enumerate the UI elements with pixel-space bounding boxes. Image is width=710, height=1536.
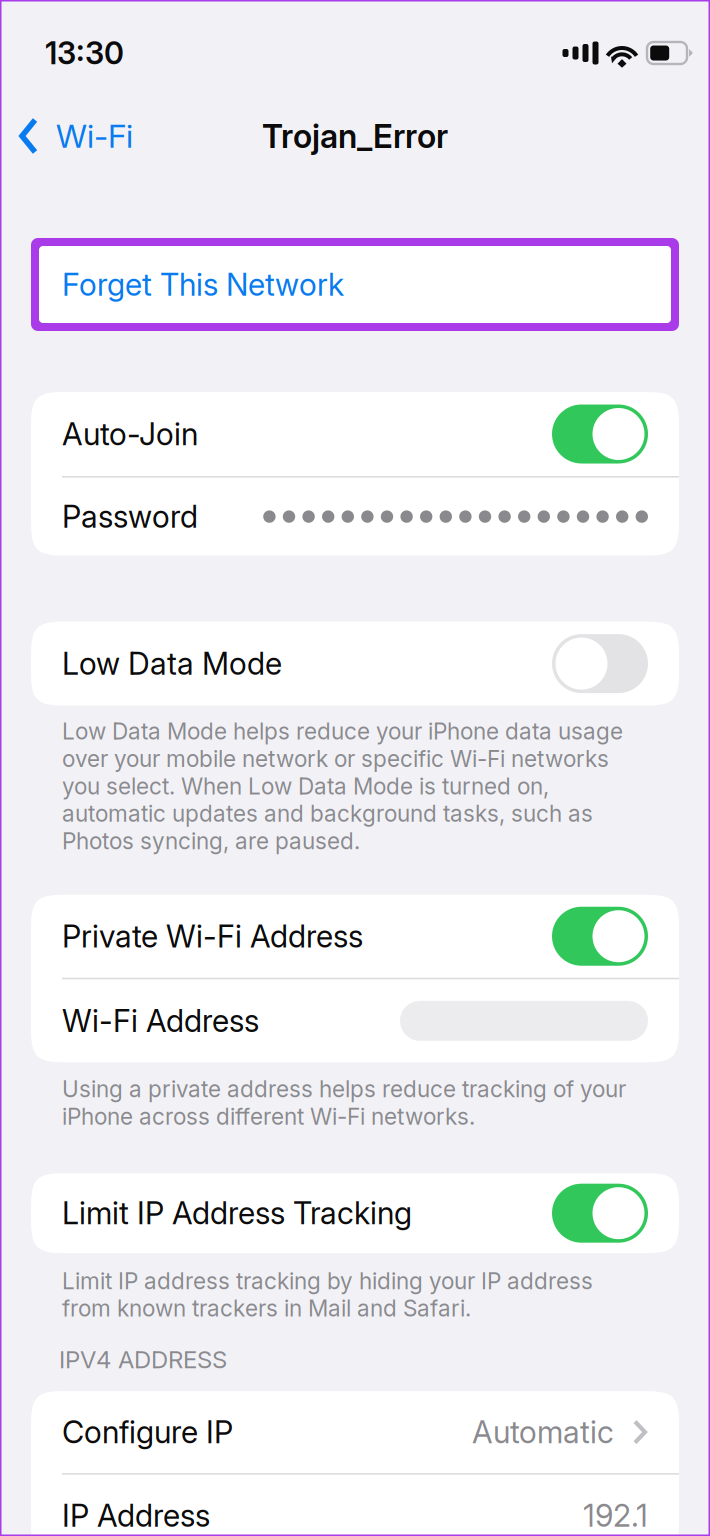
staticText: Low Data Mode helps reduce your iPhone d… [62, 718, 623, 855]
button[interactable]: Configure IP [31, 1391, 679, 1473]
staticText: Using a private address helps reduce tra… [62, 1075, 626, 1130]
button[interactable]: Forget This Network [0, 238, 710, 331]
staticText: Automatic [472, 1413, 614, 1451]
staticText: 13:30 [45, 34, 124, 71]
staticText: IPV4 ADDRESS [59, 1345, 227, 1374]
staticText: Auto-Join [62, 415, 198, 452]
staticText: Configure IP [62, 1413, 233, 1451]
staticText: Forget This Network [62, 266, 344, 303]
staticText: Limit IP address tracking by hiding your… [62, 1267, 593, 1322]
staticText: Trojan_Error [262, 116, 448, 156]
staticText: Low Data Mode [62, 645, 282, 682]
staticText: Wi-Fi Address [62, 1002, 259, 1039]
staticText: IP Address [62, 1497, 210, 1534]
staticText: Limit IP Address Tracking [62, 1195, 412, 1232]
staticText: Wi-Fi [56, 117, 133, 155]
staticText: Password [62, 498, 198, 535]
staticText: 192.1 [583, 1497, 648, 1534]
button[interactable]: Wi-Fi [0, 104, 147, 168]
staticText: Private Wi-Fi Address [62, 918, 363, 955]
